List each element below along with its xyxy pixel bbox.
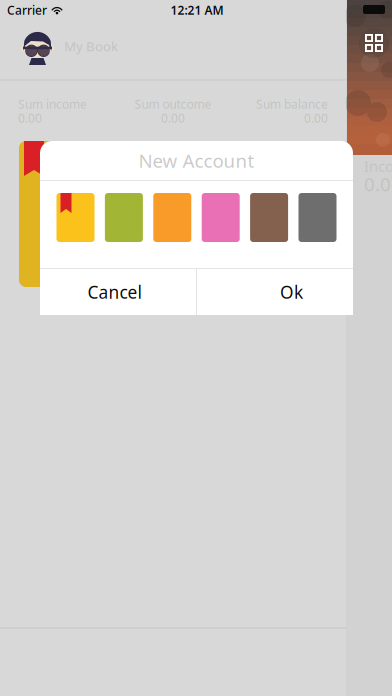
staticText: My Book xyxy=(64,37,118,55)
button[interactable]: Yellow xyxy=(56,193,94,242)
staticText: Sum balance xyxy=(256,96,328,112)
button[interactable]: Grid view xyxy=(359,28,389,58)
staticText: Sum outcome xyxy=(134,96,211,112)
staticText: Ok xyxy=(280,280,303,303)
staticText: 0.00 xyxy=(161,110,185,126)
staticText: 12:21 AM xyxy=(170,2,223,18)
staticText: Inco xyxy=(364,156,392,176)
button[interactable]: Cancel xyxy=(40,269,196,315)
staticText: 0.00 xyxy=(364,172,392,196)
button[interactable]: Ok xyxy=(197,269,353,315)
button[interactable]: Account card xyxy=(19,141,119,287)
button[interactable]: Pink xyxy=(202,193,240,242)
staticText: Sum income xyxy=(18,96,87,112)
staticText: New Account xyxy=(138,148,254,173)
staticText: Cancel xyxy=(87,280,141,303)
button[interactable]: Brown xyxy=(250,193,288,242)
button[interactable]: Gray xyxy=(298,193,336,242)
staticText: 0.00 xyxy=(304,110,328,126)
button[interactable]: Olive xyxy=(105,193,143,242)
staticText: Carrier xyxy=(7,2,47,18)
staticText: 0.00 xyxy=(18,110,42,126)
button[interactable]: Orange xyxy=(153,193,191,242)
